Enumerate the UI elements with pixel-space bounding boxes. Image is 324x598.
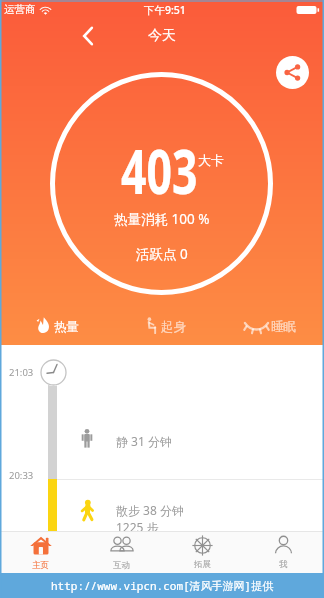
staticText: 1225 步: [116, 519, 159, 535]
staticText: 403: [121, 130, 198, 212]
staticText: 热量消耗 100 %: [114, 210, 210, 228]
button[interactable]: 互动: [81, 531, 162, 573]
button[interactable]: 主页: [0, 531, 81, 573]
button[interactable]: 我: [243, 531, 324, 573]
staticText: 互动: [113, 560, 130, 571]
staticText: 我: [279, 559, 288, 570]
button[interactable]: 起身: [143, 306, 186, 345]
staticText: 主页: [32, 560, 49, 571]
staticText: 睡眠: [271, 319, 296, 335]
staticText: 活跃点 0: [136, 245, 188, 263]
staticText: 热量: [54, 319, 79, 335]
staticText: 散步 38 分钟: [116, 502, 184, 518]
staticText: 21:03: [9, 366, 34, 379]
staticText: 静 31 分钟: [116, 433, 172, 449]
staticText: 下午9:51: [144, 3, 186, 17]
staticText: 拓展: [194, 559, 211, 570]
staticText: 起身: [161, 319, 186, 335]
staticText: 今天: [148, 27, 176, 45]
button[interactable]: Back: [74, 22, 102, 50]
staticText: http://www.vipcn.com[清风手游网]提供: [51, 578, 274, 593]
button[interactable]: 睡眠: [244, 306, 296, 345]
staticText: 运营商: [4, 3, 36, 16]
staticText: 20:33: [9, 469, 34, 482]
staticText: 大卡: [198, 152, 224, 168]
button[interactable]: 拓展: [162, 531, 243, 573]
button[interactable]: Share: [276, 56, 309, 89]
button[interactable]: 热量: [35, 306, 79, 345]
